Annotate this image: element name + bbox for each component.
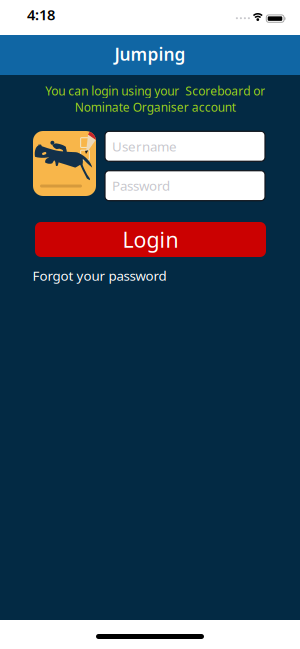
- staticText: You can login using your Scoreboard or N…: [45, 83, 265, 115]
- staticText: Forgot your password: [32, 267, 166, 284]
- button[interactable]: Username: [105, 131, 265, 161]
- staticText: Login: [122, 225, 178, 254]
- staticText: Jumping: [114, 42, 185, 65]
- staticText: Username: [112, 137, 177, 155]
- button[interactable]: Password: [105, 171, 265, 201]
- button[interactable]: Forgot your password: [32, 267, 166, 284]
- staticText: Password: [112, 177, 170, 194]
- button[interactable]: Login: [35, 222, 266, 257]
- staticText: 4:18: [27, 5, 55, 24]
